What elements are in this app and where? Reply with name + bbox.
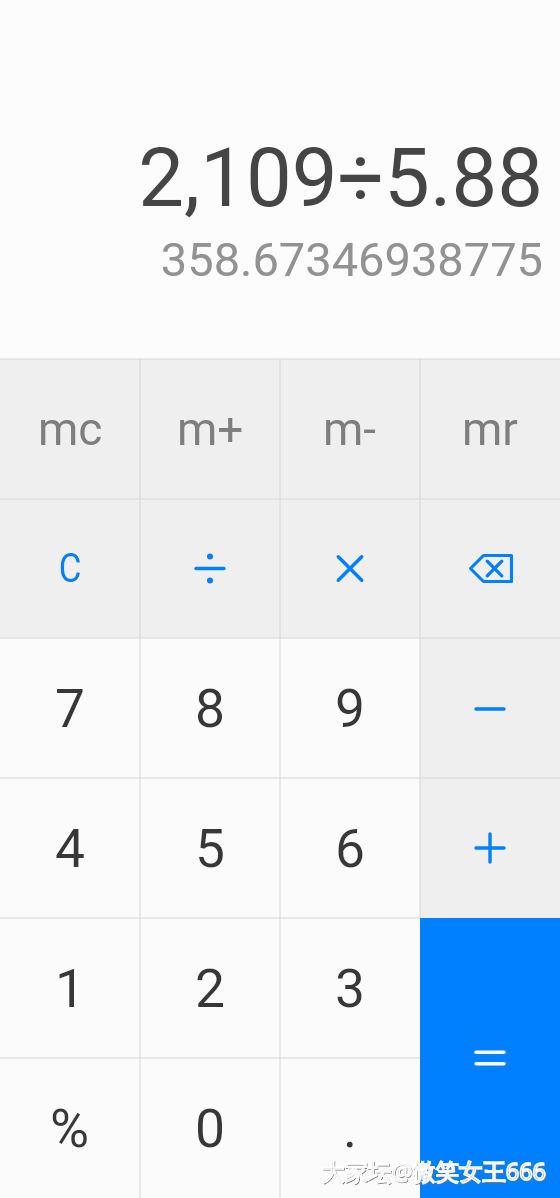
button[interactable]: 1 bbox=[0, 918, 140, 1058]
button[interactable]: . bbox=[280, 1058, 420, 1198]
staticText: m+ bbox=[177, 402, 244, 456]
button[interactable]: 4 bbox=[0, 778, 140, 918]
staticText: 9 bbox=[335, 677, 366, 740]
button[interactable]: 7 bbox=[0, 638, 140, 778]
button[interactable]: Divide bbox=[140, 499, 280, 638]
staticText: 4 bbox=[55, 817, 86, 880]
staticText: 5 bbox=[195, 817, 226, 880]
button[interactable]: m+ bbox=[140, 359, 280, 499]
staticText: 2 bbox=[195, 957, 226, 1020]
button[interactable]: % bbox=[0, 1058, 140, 1198]
button[interactable]: Minus bbox=[420, 638, 560, 778]
staticText: 358.67346938775 bbox=[160, 232, 543, 287]
staticText: 0 bbox=[195, 1097, 226, 1160]
button[interactable]: 6 bbox=[280, 778, 420, 918]
button[interactable]: Plus bbox=[420, 778, 560, 918]
button[interactable]: 9 bbox=[280, 638, 420, 778]
button[interactable]: 5 bbox=[140, 778, 280, 918]
staticText: m- bbox=[323, 402, 377, 456]
button[interactable]: 8 bbox=[140, 638, 280, 778]
staticText: 3 bbox=[335, 957, 366, 1020]
staticText: 大家坛@微笑女王666 bbox=[322, 1156, 547, 1188]
button[interactable]: C bbox=[0, 499, 140, 638]
button[interactable]: mr bbox=[420, 359, 560, 499]
staticText: 1 bbox=[55, 957, 86, 1020]
staticText: 大家坛@微笑女王666 bbox=[321, 1155, 546, 1187]
staticText: . bbox=[343, 1097, 358, 1160]
staticText: mr bbox=[462, 402, 518, 456]
staticText: C bbox=[59, 544, 82, 593]
button[interactable]: m- bbox=[280, 359, 420, 499]
staticText: 6 bbox=[335, 817, 366, 880]
button[interactable]: 0 bbox=[140, 1058, 280, 1198]
button[interactable]: 2 bbox=[140, 918, 280, 1058]
staticText: 2,109÷5.88 bbox=[138, 130, 543, 226]
button[interactable]: Equals bbox=[420, 918, 560, 1198]
button[interactable]: Backspace bbox=[420, 499, 560, 638]
button[interactable]: Multiply bbox=[280, 499, 420, 638]
staticText: 8 bbox=[195, 677, 226, 740]
button[interactable]: mc bbox=[0, 359, 140, 499]
button[interactable]: 3 bbox=[280, 918, 420, 1058]
staticText: 7 bbox=[55, 677, 86, 740]
staticText: % bbox=[50, 1097, 90, 1160]
staticText: mc bbox=[38, 402, 103, 456]
